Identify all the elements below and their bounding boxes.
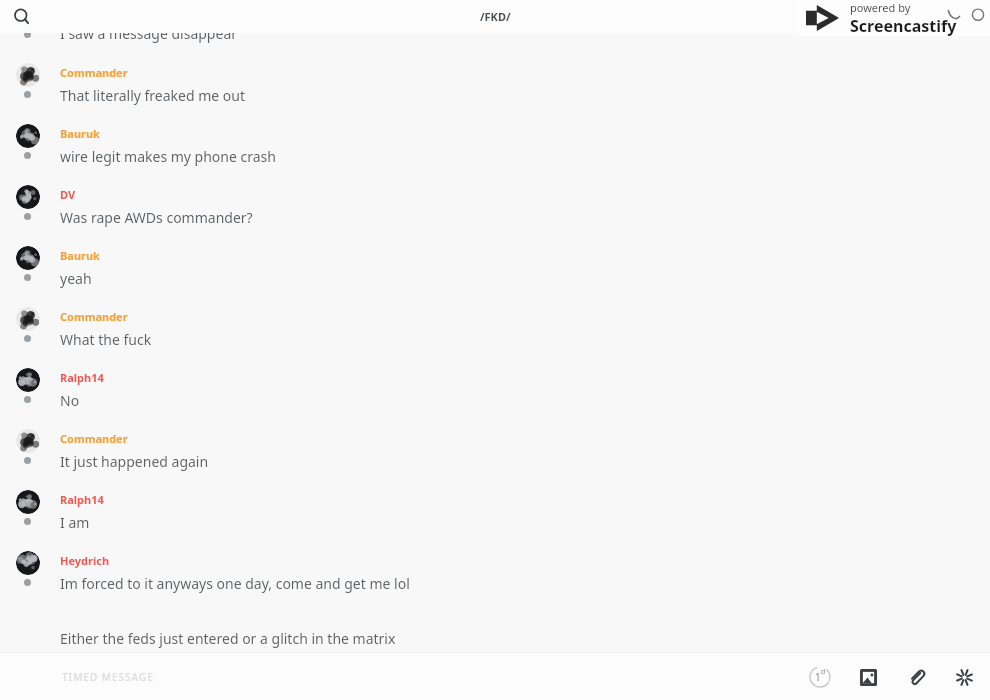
button[interactable]: Ralph14	[0, 482, 990, 543]
button[interactable]: Message timer, 1 day	[800, 657, 840, 697]
staticText: yeah	[60, 269, 92, 288]
button[interactable]: Ralph14	[0, 360, 990, 421]
button[interactable]: Bauruk	[0, 116, 990, 177]
button[interactable]: I saw a message disappear	[0, 0, 990, 55]
button[interactable]: DV	[0, 177, 990, 238]
staticText: Commander	[60, 309, 128, 324]
button[interactable]: Either the feds just entered or a glitch…	[0, 604, 990, 665]
staticText: Screencastify	[850, 15, 957, 36]
staticText: That literally freaked me out	[60, 86, 246, 105]
staticText: Commander	[60, 431, 128, 446]
staticText: Either the feds just entered or a glitch…	[60, 629, 396, 648]
staticText: 1	[815, 670, 821, 684]
staticText: Ralph14	[60, 492, 104, 507]
staticText: Bauruk	[60, 126, 100, 141]
button[interactable]: Bauruk	[0, 238, 990, 299]
staticText: Ralph14	[60, 370, 104, 385]
staticText: Im forced to it anyways one day, come an…	[60, 574, 410, 593]
staticText: It just happened again	[60, 452, 209, 471]
staticText: Bauruk	[60, 248, 100, 263]
staticText: powered by	[850, 0, 911, 15]
staticText: TIMED MESSAGE	[62, 670, 154, 684]
button[interactable]: More options	[944, 657, 984, 697]
button[interactable]: Commander	[0, 421, 990, 482]
staticText: /FKD/	[480, 9, 511, 24]
button[interactable]: Commander	[0, 299, 990, 360]
staticText: What the fuck	[60, 330, 152, 349]
button[interactable]: Search	[6, 1, 38, 33]
button[interactable]: Heydrich	[0, 543, 990, 604]
staticText: d	[821, 667, 826, 677]
button[interactable]: Attach file	[896, 657, 936, 697]
staticText: Was rape AWDs commander?	[60, 208, 253, 227]
staticText: Heydrich	[60, 553, 110, 568]
staticText: Commander	[60, 65, 128, 80]
button[interactable]: Send image	[848, 657, 888, 697]
staticText: DV	[60, 187, 76, 202]
staticText: wire legit makes my phone crash	[60, 147, 276, 166]
staticText: I saw a message disappear	[60, 24, 238, 43]
staticText: No	[60, 391, 80, 410]
staticText: I am	[60, 513, 90, 532]
button[interactable]: Commander	[0, 55, 990, 116]
